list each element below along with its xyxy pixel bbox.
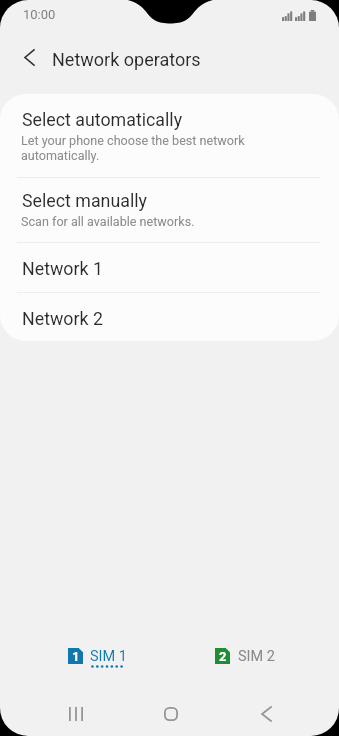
staticText: Let your phone choose the best network a… xyxy=(21,133,245,163)
staticText: SIM 1 xyxy=(90,648,127,665)
button[interactable] xyxy=(58,641,134,675)
staticText: 1 xyxy=(72,649,80,664)
staticText: SIM 2 xyxy=(238,648,275,665)
staticText: 2 xyxy=(219,649,227,664)
staticText: Network 2 xyxy=(22,308,103,329)
button[interactable] xyxy=(0,177,339,243)
button[interactable]: Recent apps xyxy=(48,692,104,736)
staticText: Scan for all available networks. xyxy=(21,214,195,229)
staticText: Network operators xyxy=(52,49,201,70)
staticText: Select automatically xyxy=(22,109,183,130)
button[interactable]: Back xyxy=(238,692,294,736)
button[interactable]: Home xyxy=(143,692,199,736)
button[interactable]: Navigate up xyxy=(11,39,48,76)
button[interactable] xyxy=(205,641,281,675)
button[interactable] xyxy=(0,292,339,341)
staticText: Network 1 xyxy=(22,258,103,279)
staticText: 10:00 xyxy=(23,7,56,22)
button[interactable] xyxy=(0,94,339,177)
button[interactable] xyxy=(0,242,339,292)
staticText: Select manually xyxy=(22,190,148,211)
